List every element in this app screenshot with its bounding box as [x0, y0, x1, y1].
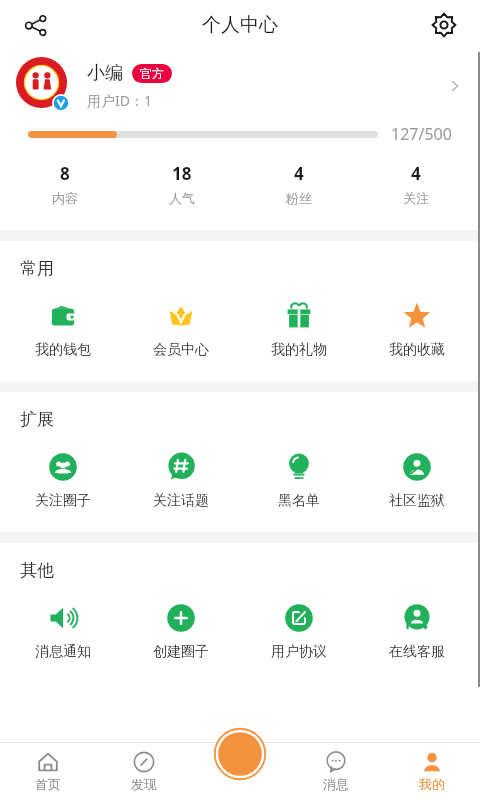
staticText: 4 [411, 162, 421, 185]
staticText: 其他 [20, 560, 54, 581]
staticText: 粉丝 [286, 190, 312, 206]
button[interactable]: 我的 [384, 742, 480, 800]
button[interactable]: 会员中心 [122, 301, 240, 359]
button[interactable]: 8 [6, 160, 123, 208]
staticText: 发现 [131, 776, 157, 792]
staticText: 常用 [20, 258, 54, 279]
button[interactable]: Share [14, 3, 58, 47]
staticText: 首页 [35, 776, 61, 792]
button[interactable]: 在线客服 [358, 603, 476, 661]
staticText: 个人中心 [202, 13, 278, 37]
staticText: 127/500 [391, 123, 452, 145]
button[interactable]: 社区监狱 [358, 452, 476, 510]
button[interactable]: 发现 [96, 742, 192, 800]
staticText: 在线客服 [389, 643, 445, 661]
staticText: 官方 [140, 66, 164, 81]
staticText: 我的钱包 [35, 341, 91, 359]
button[interactable]: 首页 [0, 742, 96, 800]
button[interactable]: 黑名单 [240, 452, 358, 510]
staticText: 消息 [323, 776, 349, 792]
staticText: 关注话题 [153, 492, 209, 510]
staticText: 创建圈子 [153, 643, 209, 661]
button[interactable]: Settings [422, 3, 466, 47]
button[interactable]: 我的钱包 [4, 301, 122, 359]
button[interactable]: 我的收藏 [358, 301, 476, 359]
button[interactable]: Post [214, 728, 266, 780]
staticText: 关注圈子 [35, 492, 91, 510]
staticText: 社区监狱 [389, 492, 445, 510]
button[interactable]: 小编 [0, 50, 480, 122]
staticText: 内容 [52, 190, 78, 206]
staticText: 扩展 [20, 409, 54, 430]
staticText: 我的礼物 [271, 341, 327, 359]
button[interactable]: 4 [240, 160, 357, 208]
button[interactable]: 消息通知 [4, 603, 122, 661]
staticText: 关注 [403, 190, 429, 206]
button[interactable]: 关注话题 [122, 452, 240, 510]
staticText: 会员中心 [153, 341, 209, 359]
button[interactable]: 创建圈子 [122, 603, 240, 661]
staticText: 黑名单 [278, 492, 320, 510]
staticText: 8 [60, 162, 70, 185]
button[interactable]: 我的礼物 [240, 301, 358, 359]
staticText: 我的收藏 [389, 341, 445, 359]
button[interactable]: 18 [123, 160, 240, 208]
staticText: 4 [294, 162, 304, 185]
staticText: 消息通知 [35, 643, 91, 661]
button[interactable]: 4 [357, 160, 474, 208]
staticText: 用户ID：1 [87, 91, 152, 110]
staticText: 用户协议 [271, 643, 327, 661]
staticText: 小编 [87, 62, 123, 85]
button[interactable]: 用户协议 [240, 603, 358, 661]
staticText: 人气 [169, 190, 195, 206]
staticText: 我的 [419, 776, 445, 792]
button[interactable]: 消息 [288, 742, 384, 800]
staticText: 18 [172, 162, 192, 185]
button[interactable]: 关注圈子 [4, 452, 122, 510]
